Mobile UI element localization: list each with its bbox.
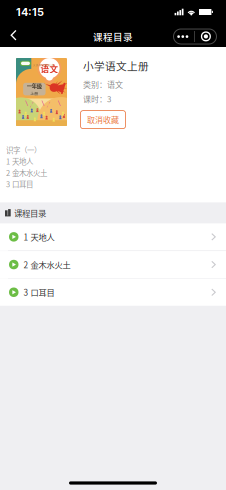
button[interactable]: Back	[3, 24, 25, 47]
staticText: 识字（一）	[6, 145, 41, 155]
staticText: 课程目录	[93, 29, 133, 43]
staticText: 课时：3	[83, 93, 111, 105]
staticText: 取消收藏	[87, 114, 119, 125]
staticText: 2 金木水火土	[6, 167, 47, 178]
staticText: 类别：语文	[83, 78, 123, 90]
staticText: 课程目录	[14, 207, 46, 219]
staticText: 义务教育教科书	[33, 63, 54, 67]
staticText: 1 天地人	[6, 156, 33, 167]
staticText: 1 天地人	[23, 231, 54, 243]
staticText: 14:15	[16, 5, 44, 19]
button[interactable]: 3 口耳目	[0, 279, 226, 306]
staticText: 3 口耳目	[6, 178, 33, 189]
staticText: 2 金木水火土	[23, 259, 70, 271]
staticText: 上册	[30, 91, 38, 96]
staticText: 3 口耳目	[23, 286, 54, 298]
button[interactable]: 1 天地人	[0, 223, 226, 250]
staticText: 语文	[40, 62, 58, 75]
staticText: 小学语文上册	[83, 58, 149, 73]
button[interactable]: 取消收藏	[80, 111, 125, 129]
staticText: 一年级	[27, 82, 42, 90]
button[interactable]: 2 金木水火土	[0, 251, 226, 278]
button[interactable]: More	[173, 28, 217, 44]
